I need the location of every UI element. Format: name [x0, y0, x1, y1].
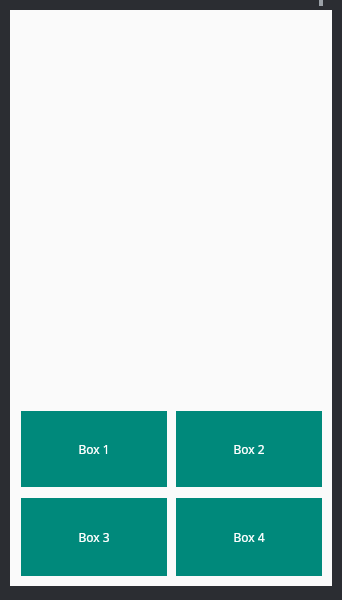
- button[interactable]: Box 1: [21, 411, 167, 487]
- staticText: Box 1: [78, 441, 110, 457]
- staticText: Box 2: [233, 441, 265, 457]
- staticText: Box 4: [233, 529, 265, 545]
- button[interactable]: Box 2: [176, 411, 322, 487]
- button[interactable]: Box 4: [176, 498, 322, 576]
- staticText: Box 3: [78, 529, 110, 545]
- button[interactable]: Box 3: [21, 498, 167, 576]
